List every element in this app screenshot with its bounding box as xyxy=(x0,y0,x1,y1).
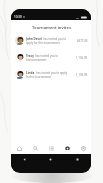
button[interactable]: Wallet xyxy=(59,142,75,154)
button[interactable]: Back xyxy=(11,154,37,165)
staticText: 1,136.99 xyxy=(76,56,88,60)
staticText: Tournament invites xyxy=(32,25,71,31)
button[interactable]: Home xyxy=(37,154,64,165)
button[interactable]: John Devel xyxy=(11,32,91,49)
button[interactable]: Search xyxy=(27,142,43,154)
button[interactable]: Home xyxy=(11,142,27,154)
staticText: John Devel xyxy=(26,37,42,41)
button[interactable]: Recents xyxy=(64,154,91,165)
staticText: 1,136.99 xyxy=(76,73,88,77)
staticText: his tournament xyxy=(26,58,47,62)
button[interactable]: Profile xyxy=(75,142,91,154)
staticText: for his tournament xyxy=(26,75,51,79)
button[interactable]: Linda xyxy=(11,66,91,83)
staticText: apply for this tournament xyxy=(26,41,60,45)
staticText: has invited you to apply xyxy=(36,71,68,75)
staticText: Tracy xyxy=(26,54,34,58)
staticText: 10:30 xyxy=(14,15,22,19)
button[interactable]: Activity xyxy=(43,142,59,154)
staticText: Linda xyxy=(26,71,35,75)
button[interactable]: Tracy xyxy=(11,49,91,66)
staticText: 4G xyxy=(76,16,80,19)
staticText: $477.00 xyxy=(77,39,88,43)
staticText: has invited you to xyxy=(43,37,67,41)
staticText: has invited you to xyxy=(35,54,59,58)
